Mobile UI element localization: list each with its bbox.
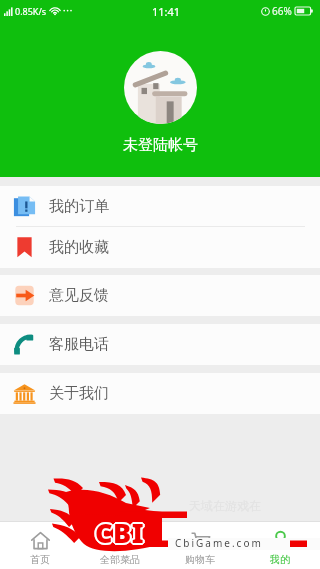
staticText: CBI <box>95 512 145 549</box>
staticText: CBI <box>96 513 146 550</box>
staticText: CBI <box>94 514 144 551</box>
staticText: 天域在游戏在 <box>189 498 261 513</box>
staticText: 未登陆帐号 <box>123 136 198 155</box>
staticText: 客服电话 <box>49 335 109 354</box>
staticText: CbiGame.com <box>175 536 263 550</box>
staticText: 66% <box>272 4 292 18</box>
button[interactable]: 客服电话 <box>0 324 320 365</box>
staticText: 我的收藏 <box>49 238 109 257</box>
button[interactable]: 全部菜品 <box>80 525 160 566</box>
staticText: CBI <box>94 513 144 550</box>
staticText: CBI <box>96 515 146 552</box>
staticText: CBI <box>95 515 145 552</box>
staticText: 11:41 <box>152 4 181 19</box>
staticText: CBI <box>95 514 145 551</box>
button[interactable]: 首页 <box>0 525 80 566</box>
button[interactable]: 关于我们 <box>0 373 320 414</box>
button[interactable]: 我的 <box>240 525 320 566</box>
button[interactable]: 我的订单 <box>0 186 320 227</box>
staticText: 我的订单 <box>49 197 109 216</box>
button[interactable]: 购物车 <box>160 525 240 566</box>
staticText: CBI <box>97 514 147 551</box>
staticText: CBI <box>93 514 143 551</box>
staticText: CBI <box>95 513 145 550</box>
button[interactable]: Avatar <box>124 51 197 124</box>
staticText: 全部菜品 <box>100 553 140 566</box>
button[interactable]: 我的收藏 <box>0 227 320 268</box>
staticText: 我的 <box>270 553 290 566</box>
staticText: 购物车 <box>185 553 215 566</box>
staticText: 首页 <box>30 553 50 566</box>
staticText: CBI <box>95 516 145 553</box>
staticText: CBI <box>94 515 144 552</box>
button[interactable]: 意见反馈 <box>0 275 320 316</box>
staticText: 0.85K/s <box>15 5 47 17</box>
staticText: CBI <box>96 514 146 551</box>
staticText: 意见反馈 <box>49 286 109 305</box>
staticText: 关于我们 <box>49 384 109 403</box>
